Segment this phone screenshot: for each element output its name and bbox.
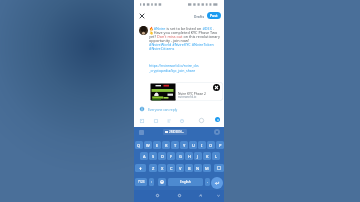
staticText: R (165, 143, 168, 148)
staticText: B (188, 166, 191, 171)
button[interactable]: Media (138, 117, 145, 124)
staticText: C (170, 166, 173, 171)
button[interactable]: P (216, 141, 224, 149)
staticText: 2MDEEN... (169, 130, 185, 134)
button[interactable]: Nvire KYC Phase 2 (150, 82, 223, 101)
staticText: I (201, 143, 203, 148)
staticText: D (161, 154, 164, 159)
button[interactable]: Enter (211, 177, 223, 189)
button[interactable]: Close (137, 11, 146, 20)
staticText: Q (137, 143, 141, 148)
staticText: N (196, 166, 200, 171)
staticText: H (188, 154, 191, 159)
button[interactable]: Back (197, 192, 204, 199)
button[interactable]: B (185, 164, 193, 172)
button[interactable]: Backspace (214, 164, 224, 172)
staticText: Nvire KYC Phase 2 (178, 91, 206, 95)
button[interactable]: A (140, 152, 148, 160)
button[interactable]: R (162, 141, 170, 149)
button[interactable]: D (158, 152, 166, 160)
button[interactable]: L (212, 152, 220, 160)
button[interactable]: E (153, 141, 161, 149)
staticText: U (192, 143, 195, 148)
staticText: T (174, 143, 177, 148)
staticText: A (143, 154, 146, 159)
button[interactable]: N (194, 164, 202, 172)
staticText: Drafts (194, 14, 205, 18)
button[interactable]: Post (207, 12, 221, 19)
staticText: https://nvireworld.io/nvire_cks _cryptop… (149, 63, 222, 73)
button[interactable]: Home (176, 192, 183, 199)
button[interactable]: I (198, 141, 206, 149)
button[interactable]: English (168, 178, 203, 186)
staticText: Z (152, 166, 155, 171)
button[interactable]: O (207, 141, 215, 149)
button[interactable]: : (149, 178, 154, 186)
button[interactable]: Location (178, 117, 185, 124)
staticText: Y (183, 143, 186, 148)
staticText: ?123 (138, 180, 145, 184)
staticText: G (179, 154, 182, 159)
button[interactable]: . (205, 178, 210, 186)
button[interactable]: W (144, 141, 152, 149)
staticText: Everyone can reply (148, 107, 178, 111)
button[interactable]: Add another post (215, 117, 220, 122)
staticText: L (215, 154, 218, 159)
button[interactable]: M (203, 164, 211, 172)
button[interactable]: G (176, 152, 184, 160)
staticText: W (146, 143, 150, 148)
staticText: X (161, 166, 164, 171)
button[interactable]: Remove link preview (213, 84, 220, 91)
button[interactable]: Drafts (193, 13, 206, 19)
button[interactable]: Hide keyboard (215, 192, 222, 199)
button[interactable]: Characters remaining (198, 117, 205, 124)
button[interactable]: GIF (152, 117, 159, 124)
staticText: V (179, 166, 182, 171)
staticText: nvireworld.io (178, 95, 197, 99)
staticText: 🔥#Nvire is set to be listed on #DEX . 👆H… (149, 26, 224, 51)
button[interactable]: Q (135, 141, 143, 149)
button[interactable]: Recents (154, 192, 161, 199)
staticText: O (209, 143, 213, 148)
button[interactable]: Poll (165, 117, 172, 124)
staticText: S (152, 154, 155, 159)
button[interactable]: Shift (135, 164, 146, 172)
staticText: K (206, 154, 209, 159)
button[interactable]: K (203, 152, 211, 160)
staticText: P (219, 143, 222, 148)
button[interactable]: F (167, 152, 175, 160)
button[interactable]: C (167, 164, 175, 172)
button[interactable]: Everyone can reply (140, 105, 224, 112)
button[interactable]: 2MDEEN... (163, 129, 187, 135)
staticText: F (170, 154, 173, 159)
button[interactable]: X (158, 164, 166, 172)
button[interactable]: Voice input (214, 129, 220, 135)
staticText: J (197, 154, 199, 159)
button[interactable]: ?123 (135, 178, 147, 186)
button[interactable]: Z (149, 164, 157, 172)
button[interactable]: J (194, 152, 202, 160)
staticText: : (151, 180, 152, 184)
button[interactable]: U (189, 141, 197, 149)
button[interactable]: T (171, 141, 179, 149)
staticText: English (180, 180, 191, 184)
staticText: Post (210, 13, 218, 18)
staticText: E (156, 143, 159, 148)
button[interactable]: V (176, 164, 184, 172)
button[interactable]: S (149, 152, 157, 160)
button[interactable]: Y (180, 141, 188, 149)
staticText: M (205, 166, 209, 171)
staticText: . (207, 180, 208, 184)
button[interactable]: Emoji (158, 178, 166, 186)
button[interactable]: H (185, 152, 193, 160)
button[interactable]: Clipboard (139, 130, 144, 135)
